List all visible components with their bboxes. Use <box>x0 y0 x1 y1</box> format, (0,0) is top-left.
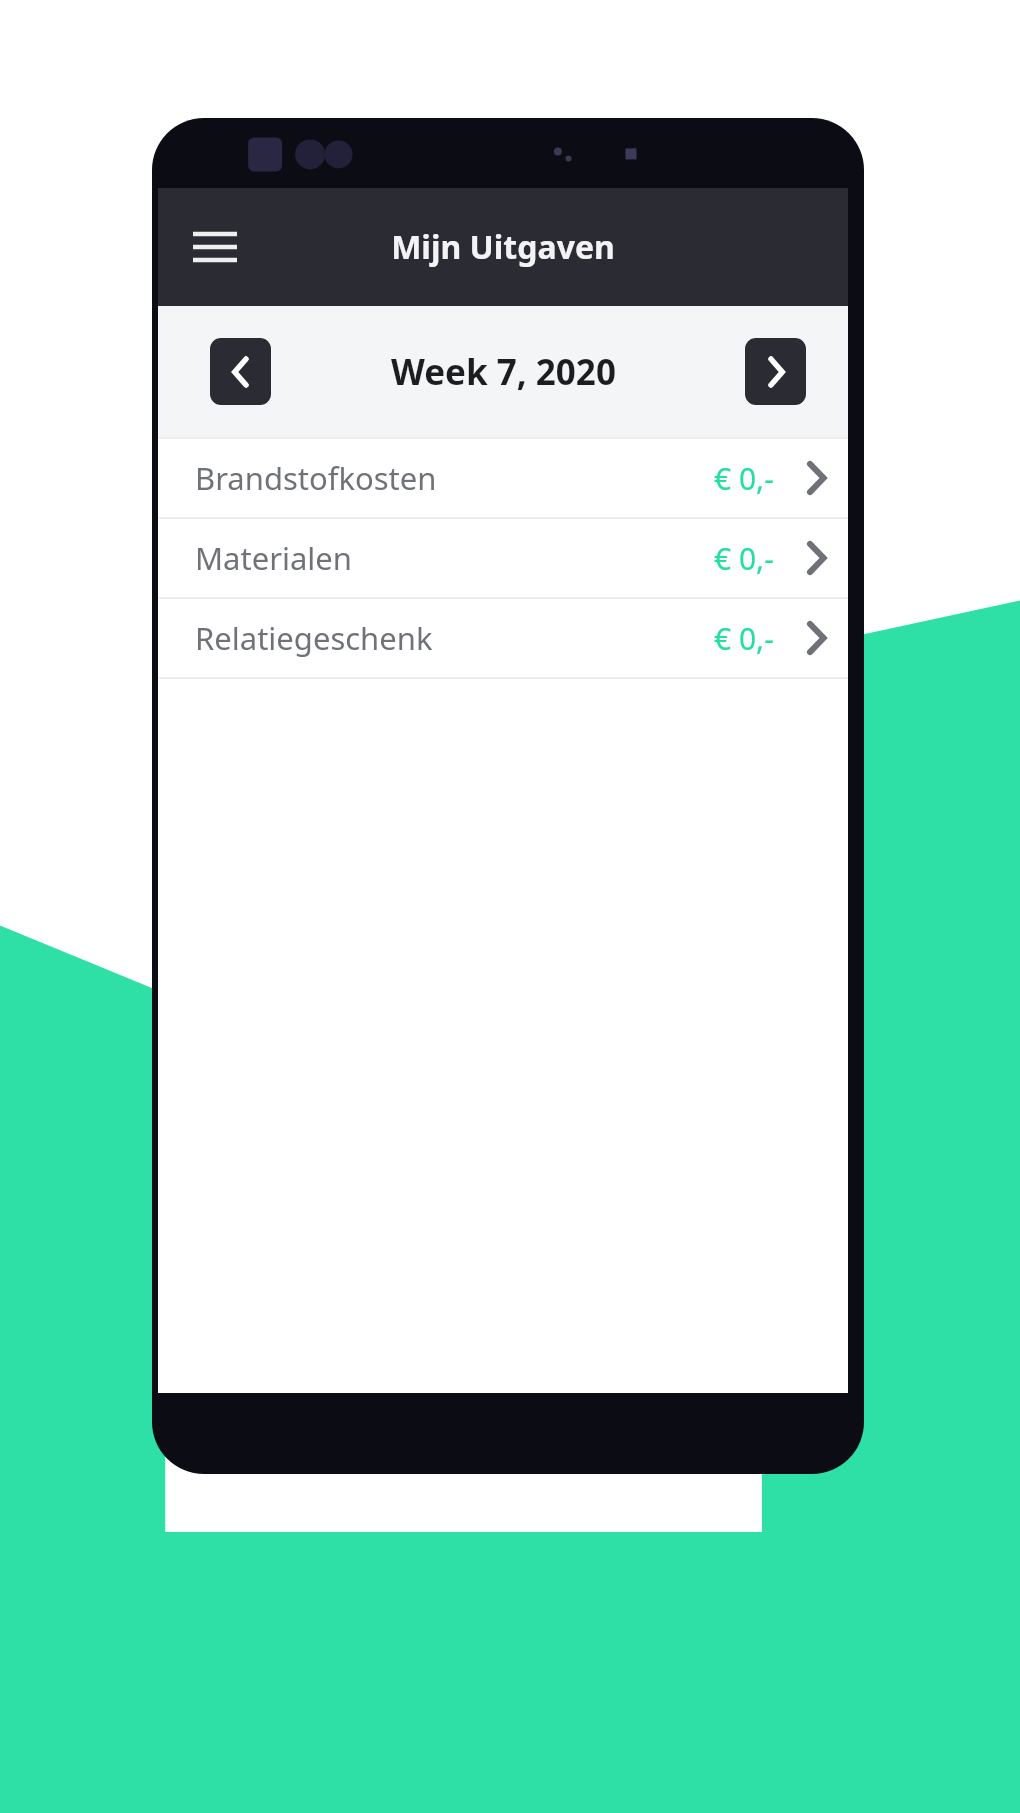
button[interactable]: Open navigation menu <box>181 213 249 281</box>
staticText: Week 7, 2020 <box>391 348 616 396</box>
staticText: € 0,- <box>714 618 774 659</box>
staticText: Materialen <box>195 537 353 579</box>
button[interactable]: Next week <box>745 338 806 405</box>
staticText: € 0,- <box>714 538 774 579</box>
staticText: Mijn Uitgaven <box>391 225 615 269</box>
staticText: Brandstofkosten <box>195 457 437 499</box>
button[interactable]: Brandstofkosten <box>158 439 848 517</box>
button[interactable]: Materialen <box>158 519 848 597</box>
button[interactable]: Relatiegeschenk <box>158 599 848 677</box>
staticText: Relatiegeschenk <box>195 617 433 659</box>
button[interactable]: Previous week <box>210 338 271 405</box>
staticText: € 0,- <box>714 458 774 499</box>
